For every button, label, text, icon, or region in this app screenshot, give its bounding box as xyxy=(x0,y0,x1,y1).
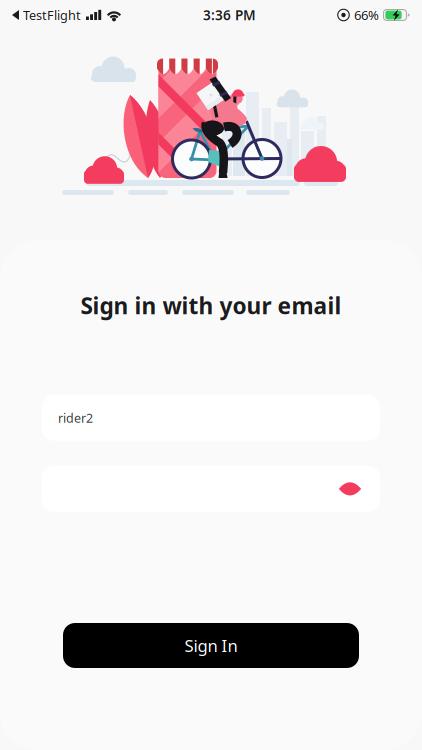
staticText: Sign in with your email xyxy=(80,290,341,321)
staticText: rider2 xyxy=(58,409,93,426)
staticText: 66% xyxy=(354,6,379,24)
button[interactable] xyxy=(42,466,380,512)
staticText: 3:36 PM xyxy=(203,6,256,24)
staticText: TestFlight xyxy=(23,6,81,24)
button[interactable]: rider2 xyxy=(42,395,380,441)
button[interactable]: Sign In xyxy=(63,623,359,668)
staticText: Sign In xyxy=(184,634,237,657)
